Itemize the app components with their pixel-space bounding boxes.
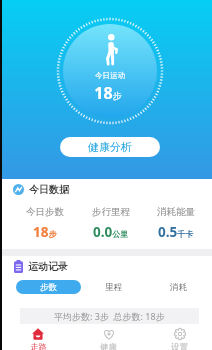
staticText: 里程 xyxy=(105,282,122,293)
button[interactable]: 健康分析 xyxy=(60,137,160,157)
staticText: 走路 xyxy=(30,342,47,350)
button[interactable]: 步数 xyxy=(16,280,81,294)
button[interactable]: 健康 xyxy=(73,325,144,350)
button[interactable]: 今日步数 xyxy=(12,206,78,241)
button[interactable]: 走路 xyxy=(3,325,73,350)
button[interactable]: 设置 xyxy=(144,325,212,350)
staticText: 步行里程 xyxy=(92,206,130,218)
button[interactable]: 步行里程 xyxy=(78,206,143,241)
staticText: 0.5千卡 xyxy=(158,223,194,241)
staticText: 消耗 xyxy=(170,282,187,293)
staticText: 0.0公里 xyxy=(93,223,129,241)
staticText: 健康分析 xyxy=(88,140,132,154)
staticText: 运动记录 xyxy=(28,260,68,273)
staticText: 18步 xyxy=(2,82,212,104)
staticText: 今日数据 xyxy=(29,183,69,196)
staticText: 步数 xyxy=(40,282,57,293)
other: 设置 xyxy=(174,328,186,340)
staticText: 平均步数: 3步 总步数: 18步 xyxy=(54,310,165,322)
staticText: 18步 xyxy=(33,223,57,241)
button[interactable]: 消耗 xyxy=(146,280,211,294)
button[interactable]: 消耗能量 xyxy=(143,206,208,241)
staticText: 健康 xyxy=(100,342,117,350)
staticText: 今日运动 xyxy=(4,71,212,80)
button[interactable]: 里程 xyxy=(81,280,146,294)
staticText: 消耗能量 xyxy=(157,206,195,218)
staticText: 设置 xyxy=(171,342,188,350)
other: 走路 xyxy=(32,328,44,340)
other: 健康 xyxy=(103,328,115,340)
staticText: 今日步数 xyxy=(26,206,64,218)
